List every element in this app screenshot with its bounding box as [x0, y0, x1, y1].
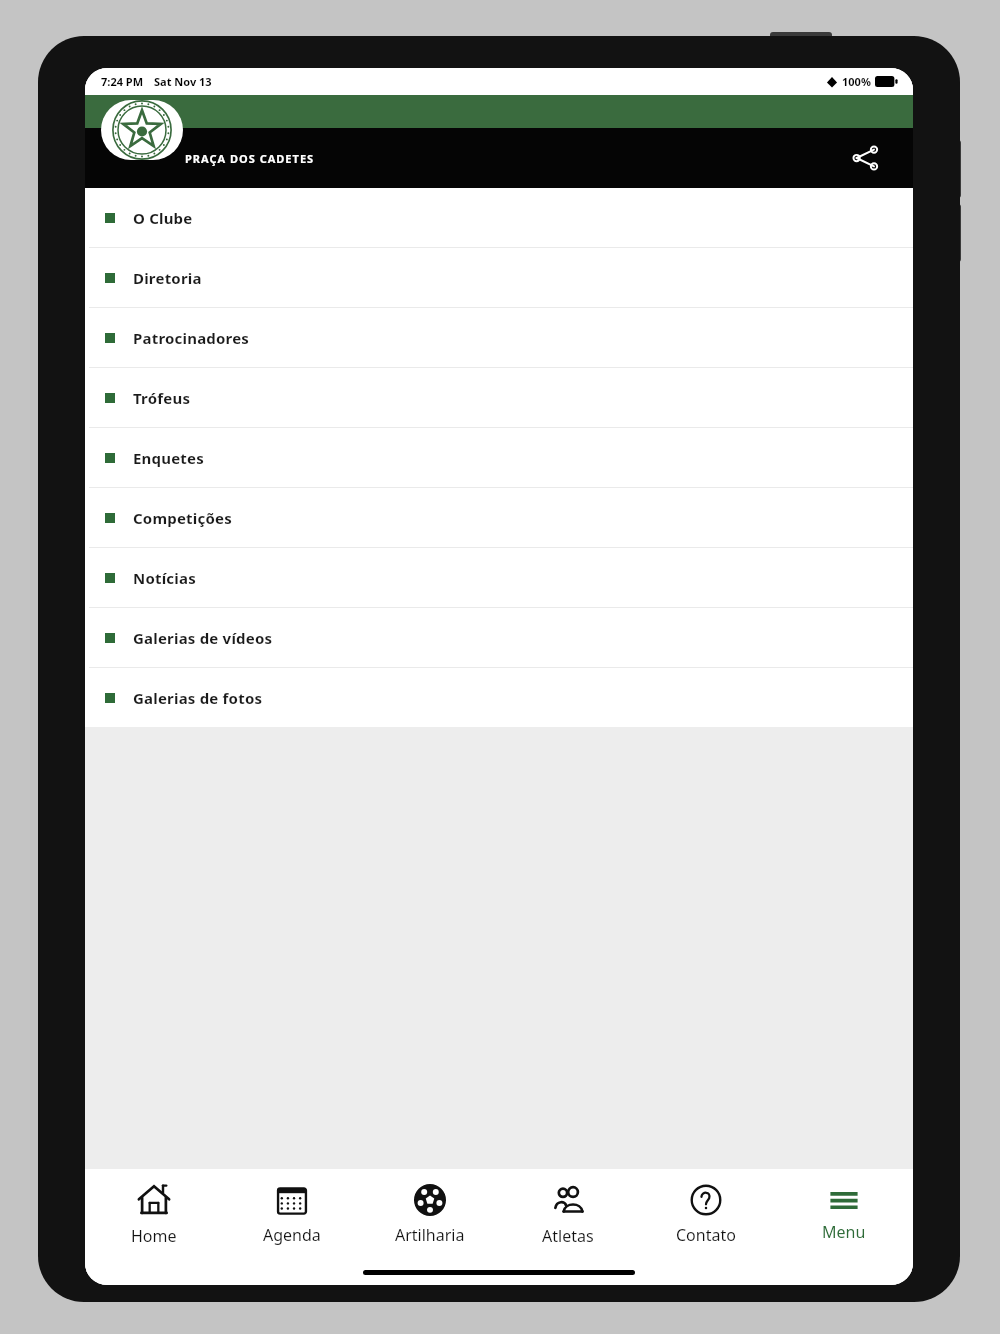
button[interactable]: Enquetes — [85, 428, 913, 487]
button[interactable]: Menu — [775, 1169, 913, 1259]
staticText: Menu — [822, 1221, 866, 1243]
staticText: Patrocinadores — [133, 328, 250, 348]
button[interactable]: Agenda — [223, 1169, 361, 1259]
staticText: Sat Nov 13 — [154, 74, 212, 89]
button[interactable]: Home — [85, 1169, 223, 1259]
staticText: Galerias de fotos — [133, 688, 263, 708]
staticText: PRAÇA DOS CADETES — [185, 151, 315, 166]
button[interactable]: Patrocinadores — [85, 308, 913, 367]
staticText: 100% — [842, 74, 871, 89]
button[interactable]: Galerias de fotos — [85, 668, 913, 727]
button[interactable]: Competições — [85, 488, 913, 547]
button[interactable]: Club logo — [101, 100, 183, 160]
button[interactable]: Diretoria — [85, 248, 913, 307]
staticText: Diretoria — [133, 268, 202, 288]
staticText: Enquetes — [133, 448, 204, 468]
staticText: Competições — [133, 508, 232, 528]
staticText: Galerias de vídeos — [133, 628, 273, 648]
staticText: Trófeus — [133, 388, 191, 408]
staticText: Home — [131, 1225, 177, 1247]
button[interactable]: Notícias — [85, 548, 913, 607]
button[interactable]: Galerias de vídeos — [85, 608, 913, 667]
staticText: Contato — [676, 1224, 736, 1246]
button[interactable]: O Clube — [85, 188, 913, 247]
button[interactable]: Contato — [637, 1169, 775, 1259]
button[interactable]: Share — [843, 136, 887, 180]
staticText: Artilharia — [395, 1224, 465, 1246]
staticText: 7:24 PM — [101, 74, 144, 89]
staticText: Notícias — [133, 568, 196, 588]
button[interactable]: Atletas — [499, 1169, 637, 1259]
staticText: O Clube — [133, 208, 193, 228]
staticText: Atletas — [542, 1225, 594, 1247]
staticText: Agenda — [263, 1224, 321, 1246]
button[interactable]: Trófeus — [85, 368, 913, 427]
button[interactable]: Artilharia — [361, 1169, 499, 1259]
